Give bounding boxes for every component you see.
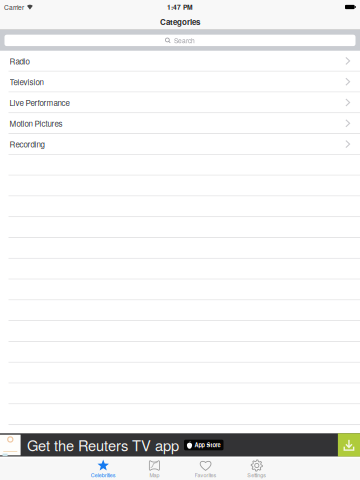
button[interactable]: Live Performance — [0, 92, 360, 113]
staticText: Radio — [10, 55, 30, 67]
button[interactable]: Search — [0, 30, 360, 51]
staticText: App Store — [194, 441, 220, 449]
staticText: 1:47 PM — [167, 2, 193, 12]
button[interactable]: Settings — [231, 458, 282, 480]
button[interactable]: Motion Pictures — [0, 113, 360, 134]
button[interactable]: Recording — [0, 134, 360, 155]
staticText: Categories — [160, 16, 200, 27]
staticText: Celebrities — [91, 471, 116, 479]
button[interactable]: Get the Reuters TV app — [0, 433, 360, 457]
button[interactable]: Celebrities — [78, 458, 129, 480]
staticText: Map — [149, 471, 159, 479]
staticText: Carrier — [4, 2, 24, 12]
button[interactable]: Television — [0, 72, 360, 92]
staticText: Live Performance — [10, 97, 70, 108]
staticText: Settings — [247, 471, 266, 479]
staticText: Search — [174, 36, 195, 45]
staticText: Television — [10, 76, 44, 87]
staticText: Favorites — [195, 471, 217, 479]
button[interactable]: Map — [129, 458, 180, 480]
button[interactable]: Radio — [0, 51, 360, 72]
staticText: Recording — [10, 138, 45, 150]
button[interactable]: Favorites — [180, 458, 231, 480]
staticText: Get the Reuters TV app — [27, 434, 179, 455]
staticText: Motion Pictures — [10, 118, 63, 129]
